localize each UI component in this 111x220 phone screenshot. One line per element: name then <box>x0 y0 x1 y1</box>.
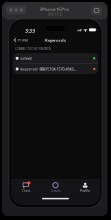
staticText: Profile <box>17 37 28 43</box>
button[interactable]: Chats <box>11 179 41 195</box>
staticText: sshnet <box>20 56 31 61</box>
button[interactable]: sshnet <box>13 53 98 63</box>
button[interactable]: Profile <box>70 179 100 195</box>
button[interactable]: keyserver BB47C104-1570-4943-… <box>13 64 98 74</box>
staticText: iPhone 15 Pro <box>40 6 69 12</box>
button[interactable]: Zoom window <box>20 8 23 12</box>
button[interactable]: Profile <box>12 36 30 44</box>
staticText: CONNECTED KEYWORDS <box>15 47 51 51</box>
button[interactable]: Circuits <box>41 179 70 195</box>
staticText: iOS 17.2 <box>48 12 62 16</box>
staticText: Profile <box>80 189 90 193</box>
button[interactable]: Device options <box>91 6 102 15</box>
button[interactable]: Close window <box>9 8 13 12</box>
staticText: Circuits <box>50 189 60 193</box>
button[interactable]: Minimise window <box>15 8 18 12</box>
staticText: Chats <box>22 189 30 193</box>
staticText: 3:33 <box>25 28 35 34</box>
staticText: Keywords <box>45 37 66 43</box>
staticText: keyserver BB47C104-1570-4943-… <box>20 66 77 71</box>
